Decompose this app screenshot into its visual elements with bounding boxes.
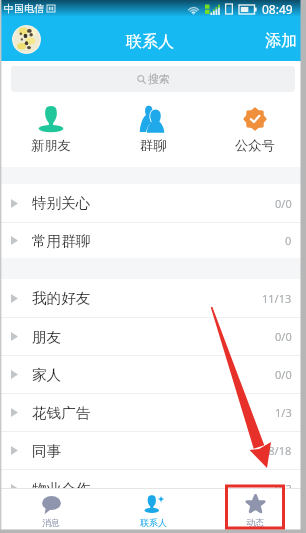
button[interactable]: 常用群聊 — [0, 223, 306, 258]
staticText: 特别关心 — [32, 194, 91, 212]
staticText: 0/0 — [275, 196, 292, 211]
staticText: 联系人 — [126, 32, 174, 52]
staticText: 物业合作 — [32, 480, 91, 498]
staticText: 0/2 — [275, 481, 292, 496]
staticText: 消息 — [42, 517, 60, 528]
staticText: 08:49 — [262, 1, 293, 17]
staticText: 常用群聊 — [32, 232, 91, 250]
button[interactable]: 家人 — [0, 356, 306, 393]
staticText: 公众号 — [235, 137, 275, 154]
staticText: 18/18 — [262, 443, 292, 458]
staticText: 家人 — [32, 366, 62, 384]
staticText: 1/3 — [275, 405, 292, 420]
button[interactable]: 花钱广告 — [0, 394, 306, 431]
button[interactable]: Profile — [12, 25, 41, 54]
button[interactable]: 物业合作 — [0, 470, 306, 507]
button[interactable]: 消息 — [0, 489, 102, 530]
staticText: 动态 — [246, 517, 264, 528]
button[interactable]: 群聊 — [102, 95, 204, 167]
button[interactable]: 搜索 — [11, 66, 295, 92]
staticText: 我的好友 — [32, 289, 91, 307]
staticText: 花钱广告 — [32, 404, 91, 422]
staticText: 同事 — [32, 442, 62, 460]
button[interactable]: 我的好友 — [0, 279, 306, 317]
button[interactable]: 添加 — [253, 23, 306, 59]
staticText: 群聊 — [140, 137, 167, 154]
button[interactable]: 特别关心 — [0, 184, 306, 222]
staticText: 0/0 — [275, 367, 292, 382]
staticText: 中国电信 — [4, 2, 44, 15]
button[interactable]: 朋友 — [0, 318, 306, 355]
button[interactable]: 新朋友 — [0, 95, 102, 167]
button[interactable]: 同事 — [0, 432, 306, 469]
button[interactable]: 联系人 — [102, 489, 204, 530]
staticText: 0/0 — [275, 329, 292, 344]
staticText: 新朋友 — [31, 137, 71, 154]
button[interactable]: 动态 — [204, 489, 306, 530]
staticText: 0 — [285, 233, 292, 248]
staticText: 联系人 — [140, 517, 167, 528]
staticText: 添加 — [265, 31, 297, 51]
button[interactable]: 公众号 — [204, 95, 306, 167]
staticText: 11/13 — [262, 291, 292, 306]
staticText: 搜索 — [148, 72, 170, 86]
staticText: 朋友 — [32, 328, 62, 346]
